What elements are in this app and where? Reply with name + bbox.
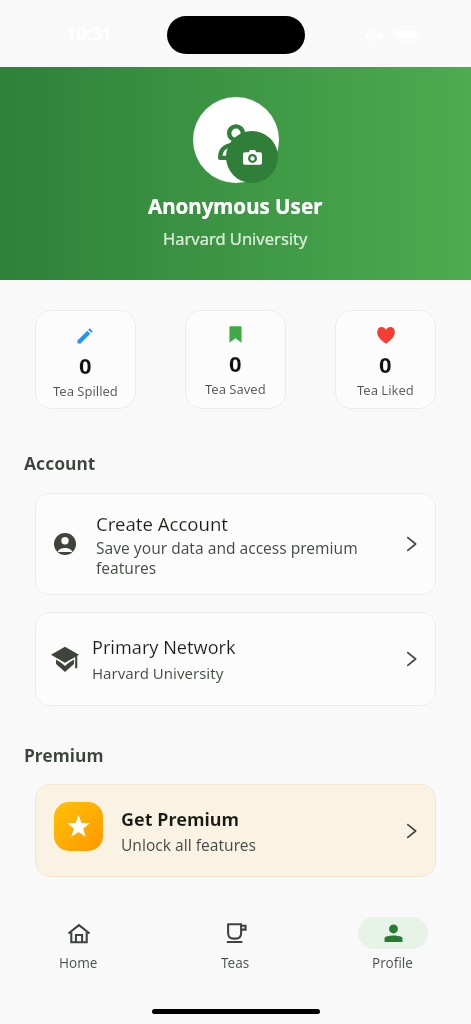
staticText: Save your data and access premium featur… <box>96 537 391 578</box>
staticText: Teas <box>221 954 250 972</box>
button[interactable]: 0 <box>335 310 436 409</box>
button[interactable]: Create Account <box>35 493 436 595</box>
button[interactable]: Change profile photo <box>226 131 278 183</box>
staticText: 0 <box>79 350 92 380</box>
button[interactable]: Profile <box>314 917 471 972</box>
button[interactable]: Get Premium <box>35 784 436 877</box>
staticText: Tea Liked <box>357 381 414 399</box>
staticText: 0 <box>379 349 392 379</box>
staticText: Harvard University <box>92 663 224 683</box>
button[interactable]: Home <box>0 917 157 972</box>
staticText: Primary Network <box>92 635 236 660</box>
staticText: Unlock all features <box>121 834 256 855</box>
staticText: Tea Saved <box>205 380 266 398</box>
button[interactable]: Primary Network <box>35 612 436 706</box>
staticText: 0 <box>229 348 242 378</box>
staticText: Create Account <box>96 511 229 536</box>
button[interactable]: Teas <box>157 917 314 972</box>
staticText: Account <box>24 451 96 475</box>
staticText: Tea Spilled <box>53 382 118 400</box>
button[interactable]: 0 <box>185 310 286 409</box>
staticText: Premium <box>24 743 104 767</box>
staticText: Get Premium <box>121 807 240 832</box>
button[interactable]: 0 <box>35 310 136 409</box>
staticText: Home <box>59 954 98 972</box>
staticText: Harvard University <box>163 227 308 249</box>
staticText: Anonymous User <box>148 192 323 220</box>
staticText: Profile <box>372 954 413 972</box>
